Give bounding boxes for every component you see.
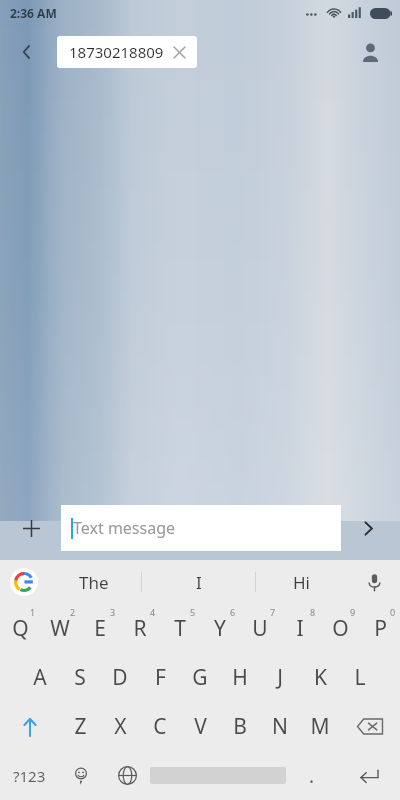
staticText: 9	[350, 606, 356, 618]
button[interactable]: 18730218809	[57, 36, 197, 68]
staticText: V	[194, 712, 207, 741]
staticText: P	[374, 614, 387, 643]
staticText: X	[114, 712, 127, 741]
staticText: O	[332, 614, 349, 643]
button[interactable]: X	[100, 702, 140, 751]
staticText: 18730218809	[69, 42, 164, 62]
button[interactable]: Enter	[338, 751, 400, 800]
button[interactable]: U	[240, 604, 280, 653]
button[interactable]: K	[300, 653, 340, 702]
button[interactable]: W	[40, 604, 80, 653]
button[interactable]: V	[180, 702, 220, 751]
staticText: K	[314, 663, 327, 692]
staticText: J	[277, 663, 283, 692]
staticText: W	[50, 614, 70, 643]
staticText: U	[252, 614, 268, 643]
button[interactable]: Shift	[0, 702, 60, 751]
button[interactable]: R	[120, 604, 160, 653]
staticText: L	[354, 663, 366, 692]
staticText: H	[232, 663, 248, 692]
button[interactable]: Z	[60, 702, 100, 751]
button[interactable]: The	[46, 560, 141, 604]
staticText: Y	[214, 614, 226, 643]
staticText: 2	[70, 606, 76, 618]
staticText: Text message	[73, 517, 176, 539]
staticText: S	[74, 663, 86, 692]
button[interactable]: Q	[0, 604, 40, 653]
staticText: D	[112, 663, 128, 692]
button[interactable]: Y	[200, 604, 240, 653]
button[interactable]: Add attachment	[13, 510, 49, 546]
staticText: 5	[190, 606, 196, 618]
staticText: 7	[270, 606, 276, 618]
staticText: I	[196, 571, 202, 594]
staticText: Z	[74, 712, 87, 741]
button[interactable]: F	[140, 653, 180, 702]
button[interactable]: C	[140, 702, 180, 751]
staticText: N	[272, 712, 288, 741]
button[interactable]: S	[60, 653, 100, 702]
button[interactable]: Text message	[61, 505, 341, 551]
button[interactable]: .	[286, 751, 338, 800]
button[interactable]: A	[20, 653, 60, 702]
staticText: I	[296, 614, 304, 643]
button[interactable]: L	[340, 653, 380, 702]
staticText: 2:36 AM	[10, 5, 57, 21]
staticText: Hi	[293, 571, 310, 594]
staticText: The	[79, 571, 109, 594]
staticText: Q	[12, 614, 29, 643]
button[interactable]: M	[300, 702, 340, 751]
staticText: A	[33, 663, 47, 692]
staticText: C	[153, 712, 167, 741]
staticText: G	[192, 663, 208, 692]
button[interactable]: H	[220, 653, 260, 702]
staticText: R	[133, 614, 147, 643]
staticText: .	[309, 763, 315, 789]
button[interactable]: D	[100, 653, 140, 702]
staticText: 3	[110, 606, 116, 618]
staticText: M	[310, 712, 330, 741]
button[interactable]: O	[320, 604, 360, 653]
button[interactable]: E	[80, 604, 120, 653]
button[interactable]: P	[360, 604, 400, 653]
button[interactable]: I	[142, 560, 255, 604]
staticText: E	[94, 614, 106, 643]
staticText: T	[174, 614, 186, 643]
button[interactable]: Change keyboard language	[104, 751, 150, 800]
button[interactable]: Emoji and comma	[58, 751, 104, 800]
button[interactable]: G	[180, 653, 220, 702]
button[interactable]: Google	[9, 567, 39, 597]
button[interactable]: N	[260, 702, 300, 751]
button[interactable]: Back	[6, 31, 48, 73]
button[interactable]: Send	[350, 510, 386, 546]
button[interactable]: Contact details	[350, 32, 390, 72]
staticText: 6	[230, 606, 236, 618]
button[interactable]: Hi	[256, 560, 346, 604]
button[interactable]: Backspace	[340, 702, 400, 751]
button[interactable]: T	[160, 604, 200, 653]
staticText: B	[233, 712, 247, 741]
button[interactable]: I	[280, 604, 320, 653]
staticText: 0	[390, 606, 396, 618]
button[interactable]: Voice input	[356, 564, 392, 600]
staticText: ?123	[13, 766, 46, 786]
staticText: 4	[150, 606, 156, 618]
button[interactable]: J	[260, 653, 300, 702]
button[interactable]: Space	[150, 751, 286, 800]
button[interactable]: B	[220, 702, 260, 751]
button[interactable]: ?123	[0, 751, 58, 800]
staticText: 1	[30, 606, 36, 618]
staticText: 8	[310, 606, 316, 618]
staticText: F	[155, 663, 166, 692]
